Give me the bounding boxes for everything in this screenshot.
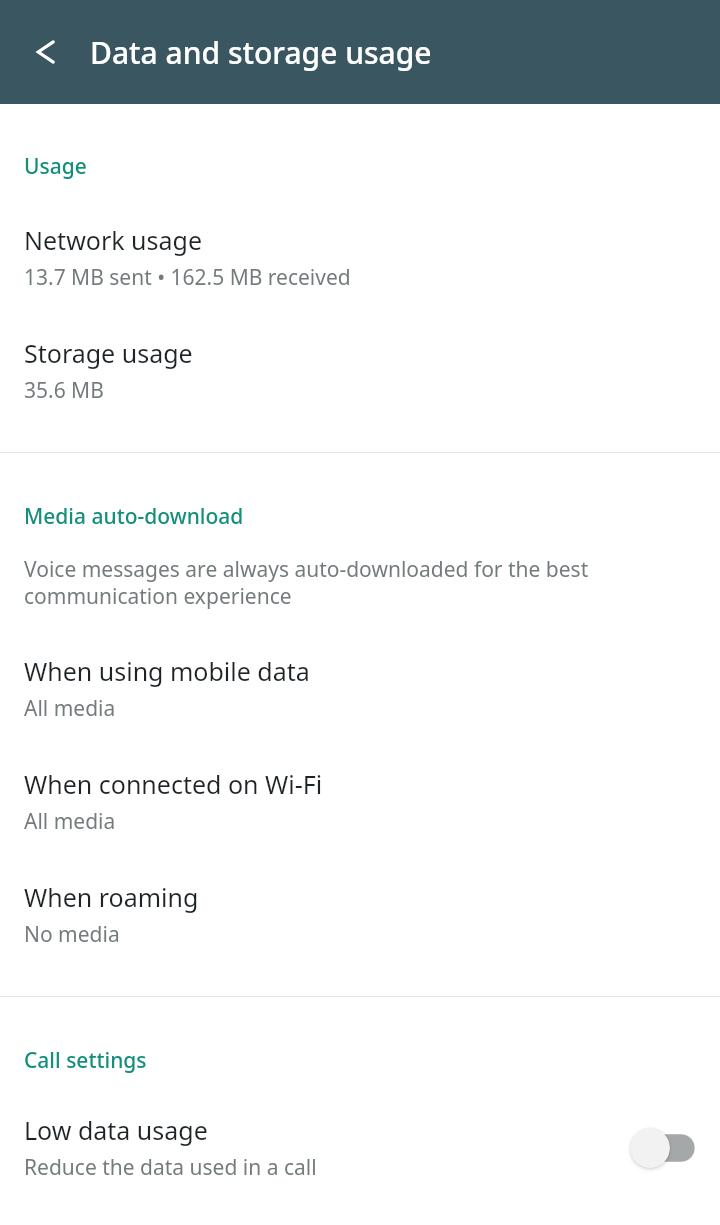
staticText: Call settings [24, 1046, 147, 1075]
staticText: Media auto-download [24, 502, 244, 531]
button[interactable]: When connected on Wi-Fi [0, 723, 720, 836]
button[interactable]: When using mobile data [0, 610, 720, 723]
button[interactable]: Storage usage [0, 292, 720, 405]
staticText: Reduce the data used in a call [24, 1153, 317, 1182]
staticText: When connected on Wi-Fi [24, 767, 323, 801]
staticText: When using mobile data [24, 654, 310, 688]
staticText: 13.7 MB sent • 162.5 MB received [24, 263, 351, 292]
staticText: Usage [24, 152, 87, 181]
staticText: When roaming [24, 880, 199, 914]
staticText: No media [24, 920, 120, 949]
button[interactable]: Network usage [0, 181, 720, 292]
button[interactable]: Back [14, 22, 74, 82]
staticText: Data and storage usage [90, 32, 432, 73]
staticText: 35.6 MB [24, 376, 104, 405]
button[interactable]: Low data usage [0, 1075, 720, 1182]
staticText: All media [24, 694, 116, 723]
staticText: Voice messages are always auto-downloade… [24, 555, 630, 610]
staticText: Low data usage [24, 1113, 208, 1147]
button[interactable]: When roaming [0, 836, 720, 949]
staticText: All media [24, 807, 116, 836]
staticText: Storage usage [24, 336, 193, 370]
staticText: Network usage [24, 223, 203, 257]
